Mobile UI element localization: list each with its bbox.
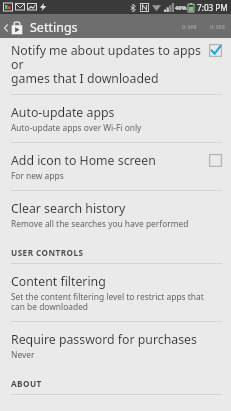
staticText: Notify me about updates to apps or games… [11,42,204,87]
button[interactable]: Add icon to Home screen [0,143,231,190]
button[interactable]: Require password for purchases [0,322,231,369]
staticText: U: 0KB [210,24,225,30]
button[interactable]: Unchecked [209,154,222,167]
staticText: Settings [30,19,78,36]
button[interactable]: Notify me about updates to apps or games… [0,38,231,94]
staticText: Require password for purchases [11,331,197,348]
staticText: Content filtering [11,273,106,290]
staticText: Set the content filtering level to restr… [11,291,204,312]
button[interactable]: Content filtering [0,264,231,321]
staticText: USER CONTROLS [11,247,84,258]
staticText: 40% [175,4,187,12]
button[interactable]: Clear search history [0,191,231,238]
staticText: ABOUT [11,378,42,389]
button[interactable]: Navigate up [3,19,82,36]
staticText: 7:03 PM [197,2,228,13]
staticText: Remove all the searches you have perform… [11,218,189,229]
staticText: Clear search history [11,200,126,217]
staticText: Never [11,349,35,360]
staticText: For new apps [11,170,64,181]
staticText: Add icon to Home screen [11,152,156,169]
staticText: D: 0KB [182,24,197,30]
button[interactable]: Checked [209,44,222,57]
button[interactable]: Auto-update apps [0,95,231,142]
staticText: Auto-update apps over Wi-Fi only [11,122,142,133]
staticText: Auto-update apps [11,104,115,121]
